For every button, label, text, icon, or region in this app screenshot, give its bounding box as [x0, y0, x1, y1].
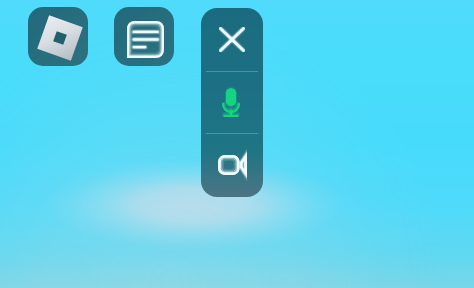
- button[interactable]: Close: [201, 8, 263, 71]
- button[interactable]: Camera: [201, 134, 263, 197]
- button[interactable]: Chat: [114, 7, 174, 66]
- button[interactable]: Microphone: [201, 72, 263, 133]
- button[interactable]: Roblox menu: [28, 7, 88, 66]
